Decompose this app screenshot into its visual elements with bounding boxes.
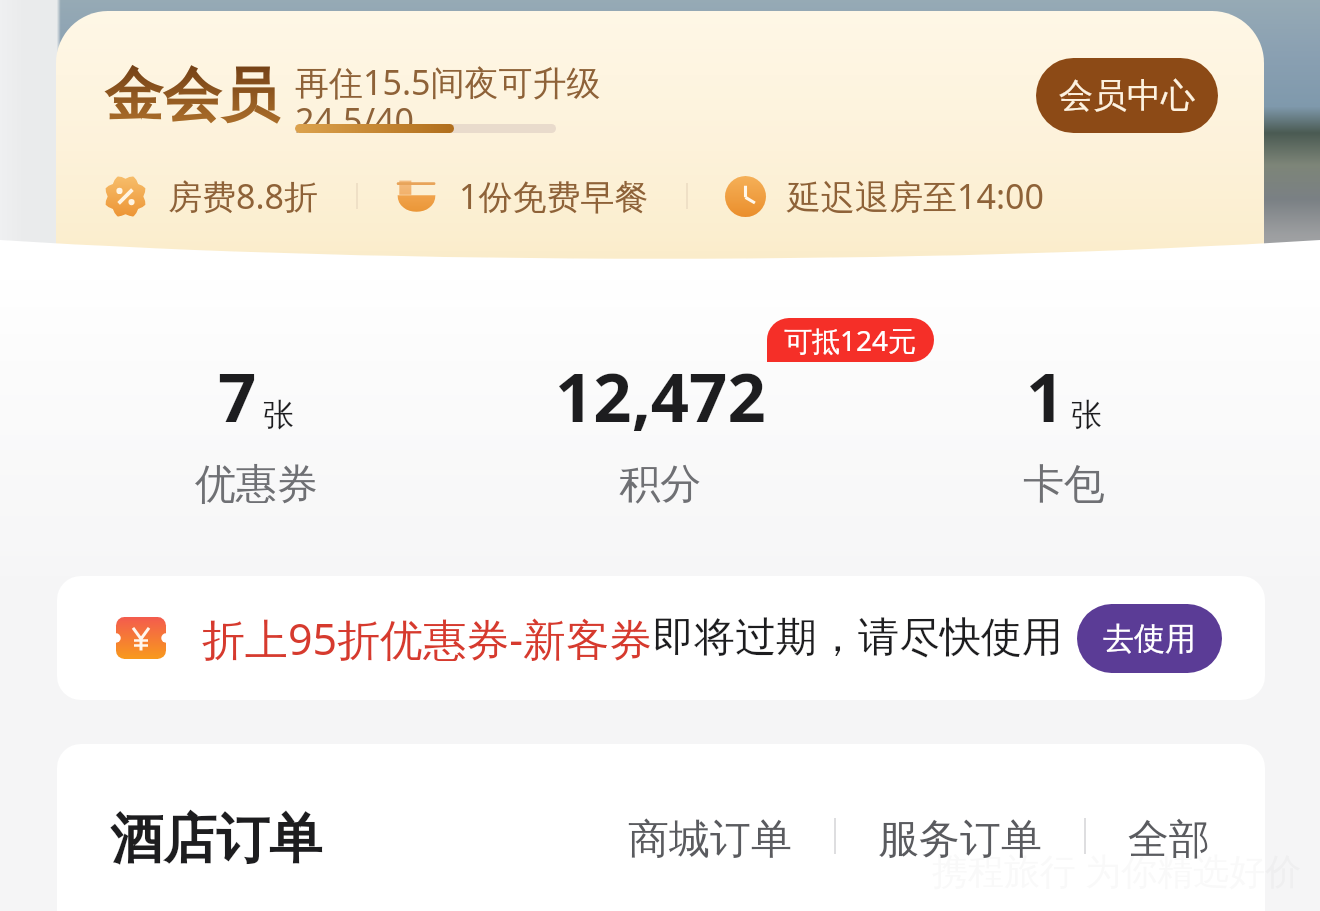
staticText: 12,472 [555,350,766,441]
staticText: 1 [1026,350,1065,441]
button[interactable]: 服务订单 [878,814,1042,866]
other: 免费早餐 [395,175,438,218]
other: 延迟退房 [725,176,766,217]
button[interactable]: 会员中心 [1036,58,1218,133]
button[interactable]: 去使用 [1077,604,1222,673]
staticText: 可抵124元 [784,321,917,359]
staticText: 张 [1071,395,1102,434]
button[interactable]: 免费早餐 [395,173,649,219]
staticText: 会员中心 [1059,74,1195,117]
staticText: 去使用 [1103,619,1196,658]
button[interactable]: 金会员 [56,11,1264,266]
button[interactable]: 7 [54,350,458,511]
button[interactable]: 1 [862,350,1266,511]
other: 房费折扣 [104,175,147,218]
staticText: 24.5/40 [295,97,414,143]
staticText: 服务订单 [878,814,1042,866]
staticText: 折上95折优惠券-新客券 [202,609,653,668]
staticText: 携程旅行 为你精选好价 [932,846,1302,895]
staticText: 金会员 [105,59,279,132]
staticText: 即将过期，请尽快使用 [653,612,1063,664]
button[interactable]: 延迟退房 [725,173,1044,219]
staticText: 7 [218,350,257,441]
button[interactable]: 房费折扣 [104,173,319,219]
button[interactable]: 全部 [1128,814,1210,866]
button[interactable]: 酒店订单 [110,806,322,873]
button[interactable]: 12,472 [458,350,862,511]
staticText: 商城订单 [628,814,792,866]
staticText: 全部 [1128,814,1210,866]
staticText: 延迟退房至14:00 [787,173,1044,219]
staticText: 酒店订单 [110,806,322,873]
staticText: 卡包 [1023,459,1105,511]
staticText: 再住15.5间夜可升级 [295,59,601,105]
button[interactable]: 折上95折优惠券-新客券 [57,576,1265,700]
staticText: 张 [263,395,294,434]
staticText: 积分 [619,459,701,511]
staticText: 优惠券 [195,459,318,511]
staticText: 房费8.8折 [168,173,319,219]
staticText: 1份免费早餐 [459,173,649,219]
button[interactable]: 商城订单 [628,814,792,866]
